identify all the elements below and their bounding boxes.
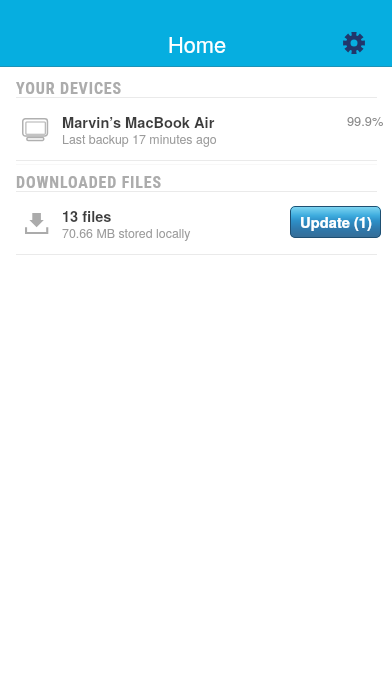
staticText: 99.9% [347,111,384,129]
staticText: 70.66 MB stored locally [62,224,191,242]
staticText: Last backup 17 minutes ago [62,130,217,148]
button[interactable]: Update (1) [290,206,381,238]
staticText: 13 files [62,206,112,227]
button[interactable]: Marvin’s MacBook Air [0,98,392,160]
staticText: YOUR DEVICES [16,79,123,98]
button[interactable]: Settings [336,25,372,61]
staticText: Update (1) [300,211,372,232]
staticText: Home [168,28,227,59]
staticText: DOWNLOADED FILES [16,173,162,192]
staticText: Marvin’s MacBook Air [62,112,215,133]
